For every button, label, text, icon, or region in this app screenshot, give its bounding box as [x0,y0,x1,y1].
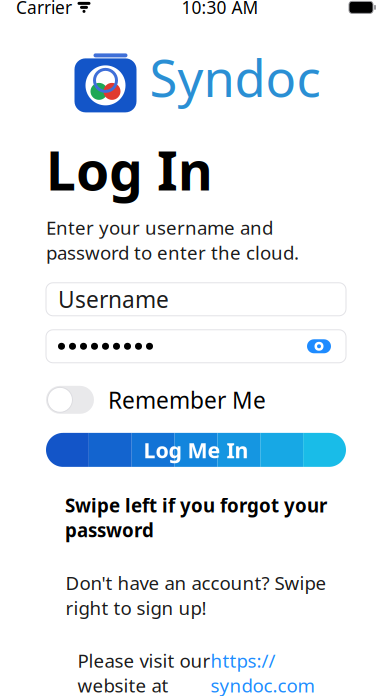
button[interactable]: Don't have an account? Swipe right to si… [46,570,346,620]
staticText: Username [58,284,169,314]
staticText: Don't have an account? Swipe right to si… [65,570,326,620]
button[interactable]: Show password [304,333,334,359]
staticText: 10:30 AM [181,0,258,19]
staticText: Log In [46,134,213,205]
staticText: https://syndoc.com [210,648,314,696]
button[interactable]: Log Me In [46,433,346,467]
staticText: Swipe left if you forgot your password [65,493,327,542]
button[interactable]: Remember Me [46,385,346,415]
staticText: Please visit our website at [77,648,210,696]
staticText: Carrier [16,0,72,19]
button[interactable]: https://syndoc.com [210,648,314,696]
staticText: Syndoc [149,44,320,111]
staticText: Enter your username and password to ente… [46,215,299,265]
staticText: Log Me In [143,436,248,464]
staticText: Remember Me [108,385,266,415]
button[interactable]: Swipe left if you forgot your password [46,493,346,542]
